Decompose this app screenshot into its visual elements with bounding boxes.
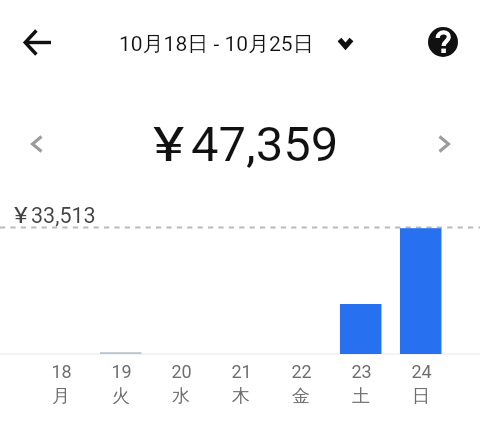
button[interactable]: 21: [211, 361, 271, 408]
staticText: 18: [51, 361, 72, 382]
staticText: 22: [291, 361, 312, 382]
staticText: 土: [352, 385, 370, 408]
staticText: 金: [292, 385, 310, 408]
staticText: 木: [232, 385, 250, 408]
button[interactable]: Previous week: [16, 123, 58, 165]
staticText: 20: [171, 361, 192, 382]
button[interactable]: 10月18日 - 10月25日: [119, 2, 354, 86]
button[interactable]: 23: [331, 361, 391, 408]
staticText: 10月18日 - 10月25日: [119, 31, 314, 57]
staticText: 19: [111, 361, 132, 382]
staticText: 23: [351, 361, 372, 382]
button[interactable]: Help: [428, 27, 458, 57]
button[interactable]: 18: [31, 361, 91, 408]
staticText: 33,513: [31, 203, 96, 228]
staticText: 水: [172, 385, 190, 408]
staticText: ¥: [153, 116, 185, 173]
staticText: 24: [411, 361, 432, 382]
button[interactable]: 22: [271, 361, 331, 408]
button[interactable]: 20: [151, 361, 211, 408]
staticText: 21: [231, 361, 252, 382]
staticText: 火: [112, 385, 130, 408]
button[interactable]: Next week: [423, 123, 465, 165]
button[interactable]: 24: [391, 361, 451, 408]
staticText: 月: [52, 385, 70, 408]
button[interactable]: 19: [91, 361, 151, 408]
staticText: 47,359: [191, 116, 339, 173]
staticText: 日: [412, 385, 430, 408]
button[interactable]: Back: [13, 18, 61, 66]
staticText: ¥: [14, 203, 29, 228]
